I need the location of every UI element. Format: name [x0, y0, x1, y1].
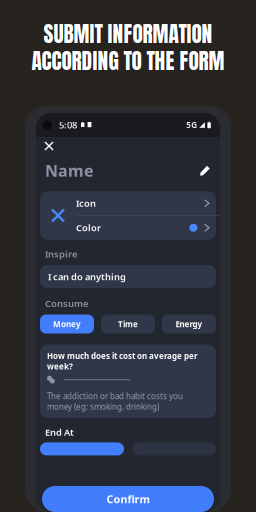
staticText: How much does it cost on average per wee…: [47, 350, 198, 372]
staticText: Confirm: [106, 492, 149, 506]
staticText: Consume: [45, 297, 88, 309]
staticText: SUBMIT INFORMATION: [43, 18, 212, 50]
staticText: 5G: [186, 120, 197, 130]
button[interactable]: Confirm: [42, 486, 214, 512]
staticText: I can do anything: [48, 270, 126, 283]
button[interactable]: End date: [40, 442, 124, 455]
button[interactable]: Time: [101, 314, 155, 333]
staticText: Inspire: [45, 248, 77, 260]
button[interactable]: Close: [40, 137, 60, 155]
staticText: Time: [118, 319, 138, 329]
staticText: Money: [53, 319, 81, 329]
staticText: The addiction or bad habit costs you mon…: [47, 391, 183, 412]
staticText: 5:08: [59, 119, 77, 131]
button[interactable]: Energy: [162, 314, 216, 333]
staticText: ACCORDING TO THE FORM: [31, 45, 224, 77]
button[interactable]: Money: [40, 314, 94, 333]
button[interactable]: Edit name: [200, 166, 210, 176]
staticText: Energy: [175, 319, 202, 329]
button[interactable]: Color: [76, 216, 216, 240]
staticText: Icon: [76, 197, 96, 209]
button[interactable]: Icon: [76, 191, 216, 215]
staticText: Name: [45, 160, 94, 181]
staticText: End At: [45, 426, 74, 438]
staticText: Color: [76, 222, 101, 234]
button[interactable]: End time: [132, 442, 216, 455]
